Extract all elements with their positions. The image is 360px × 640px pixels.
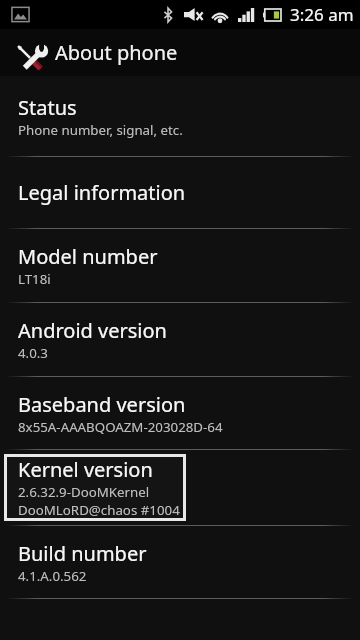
- staticText: 8x55A-AAABQOAZM-203028D-64: [18, 418, 223, 436]
- staticText: 4.1.A.0.562: [18, 567, 87, 585]
- staticText: 3:26 am: [290, 3, 354, 26]
- staticText: Build number: [18, 540, 147, 567]
- staticText: Android version: [18, 317, 167, 344]
- staticText: 2.6.32.9-DooMKernel: [18, 483, 150, 501]
- staticText: About phone: [55, 39, 178, 66]
- staticText: Model number: [18, 243, 158, 270]
- button[interactable]: Legal information: [0, 157, 360, 228]
- button[interactable]: Kernel version: [0, 450, 360, 525]
- button[interactable]: Build number: [0, 526, 360, 598]
- staticText: 4.0.3: [18, 344, 48, 362]
- staticText: Baseband version: [18, 391, 186, 418]
- button[interactable]: Model number: [0, 229, 360, 302]
- staticText: Legal information: [18, 179, 186, 206]
- button[interactable]: Status: [0, 76, 360, 156]
- button[interactable]: Android version: [0, 303, 360, 376]
- staticText: Phone number, signal, etc.: [18, 121, 183, 139]
- button[interactable]: Baseband version: [0, 377, 360, 449]
- staticText: LT18i: [18, 270, 51, 288]
- staticText: Status: [18, 94, 77, 121]
- staticText: DooMLoRD@chaos #1004: [18, 501, 180, 519]
- staticText: Kernel version: [18, 456, 153, 483]
